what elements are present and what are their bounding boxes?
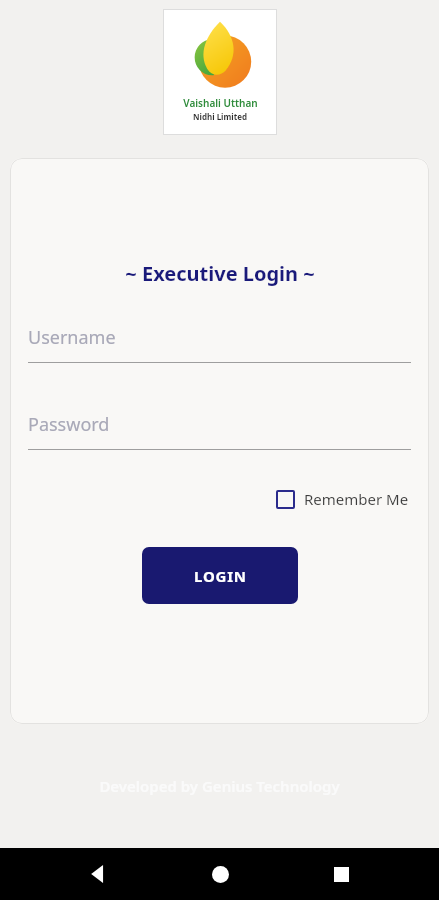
staticText: Password bbox=[28, 412, 110, 437]
staticText: Nidhi Limited bbox=[193, 111, 247, 122]
button[interactable]: Password bbox=[28, 412, 411, 450]
staticText: Vaishali Utthan bbox=[183, 96, 258, 110]
button[interactable]: Remember Me bbox=[274, 485, 411, 513]
button[interactable]: LOGIN bbox=[142, 547, 298, 604]
button[interactable]: Home bbox=[196, 850, 244, 898]
staticText: Remember Me bbox=[304, 489, 409, 509]
staticText: LOGIN bbox=[194, 566, 247, 586]
staticText: Username bbox=[28, 325, 116, 350]
staticText: Developed by Genius Technology bbox=[99, 776, 340, 796]
staticText: ~ Executive Login ~ bbox=[125, 260, 315, 287]
button[interactable]: Username bbox=[28, 325, 411, 363]
button[interactable]: Recent apps bbox=[317, 850, 365, 898]
button[interactable]: Back bbox=[74, 850, 122, 898]
